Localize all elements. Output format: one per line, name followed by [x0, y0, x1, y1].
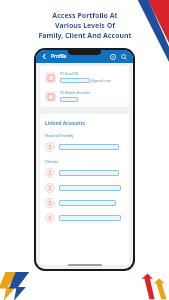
staticText: Clients — [45, 159, 58, 164]
staticText: Access Portfolio At Various Levels Of Fa… — [38, 11, 132, 41]
button[interactable]: Back — [40, 52, 49, 61]
staticText: @gmail.com — [91, 78, 112, 83]
staticText: ID Email ID — [60, 71, 79, 76]
staticText: Profile — [51, 53, 67, 60]
button[interactable] — [45, 213, 124, 223]
button[interactable]: Info — [108, 52, 118, 62]
button[interactable]: ID Mobile Number — [45, 90, 124, 102]
staticText: ID Mobile Number — [60, 90, 91, 95]
button[interactable] — [45, 168, 124, 178]
button[interactable] — [45, 198, 124, 208]
staticText: Linked Accounts — [45, 120, 85, 127]
button[interactable] — [45, 183, 124, 193]
button[interactable] — [45, 142, 124, 152]
staticText: Head of Family — [45, 133, 74, 138]
button[interactable]: ID Email ID — [45, 71, 124, 83]
button[interactable]: Search — [119, 52, 129, 62]
